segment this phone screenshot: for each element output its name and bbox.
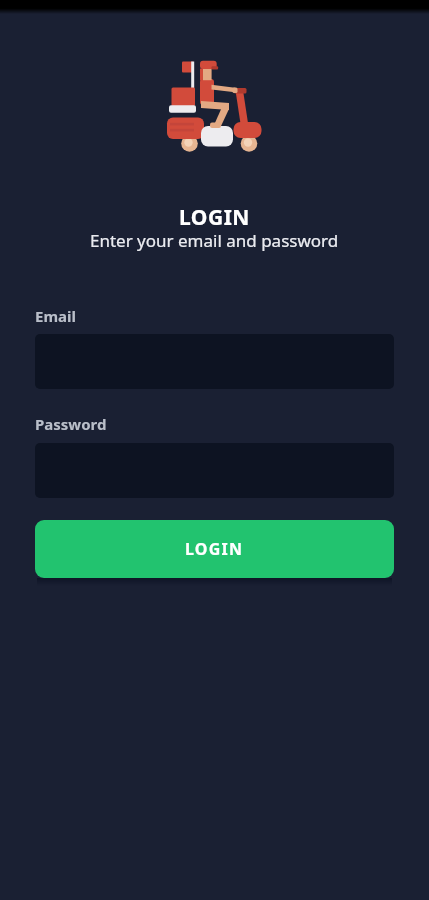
button[interactable]: LOGIN xyxy=(35,520,394,578)
staticText: LOGIN xyxy=(179,203,250,232)
staticText: Enter your email and password xyxy=(90,229,339,252)
staticText: LOGIN xyxy=(185,538,244,560)
staticText: Password xyxy=(35,414,107,434)
staticText: Email xyxy=(35,306,76,326)
